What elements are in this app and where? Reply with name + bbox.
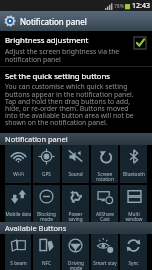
staticText: Smart stay — [93, 260, 117, 266]
button[interactable]: Multi window — [120, 185, 147, 222]
button[interactable]: Sound — [62, 145, 89, 183]
staticText: Mobile data — [5, 211, 31, 217]
staticText: 12:43 — [132, 1, 150, 11]
staticText: Blocking mode — [37, 211, 56, 222]
button[interactable]: Brightness adjustment checkbox — [134, 37, 146, 49]
staticText: Driving mode — [68, 260, 84, 270]
button[interactable]: Blocking mode — [33, 185, 60, 222]
staticText: You can customise which quick setting bu… — [5, 82, 141, 127]
button[interactable]: Wi-Fi — [5, 145, 31, 183]
staticText: Notification panel — [20, 16, 87, 27]
staticText: Sound — [68, 171, 83, 177]
button[interactable]: NFC — [33, 234, 60, 270]
staticText: Wi-Fi — [13, 171, 24, 177]
button[interactable]: Driving mode — [62, 234, 89, 270]
staticText: Set the quick setting buttons — [5, 71, 111, 82]
button[interactable]: Mobile data — [5, 185, 31, 222]
button[interactable]: Sync — [120, 234, 147, 270]
staticText: Power saving — [68, 211, 83, 222]
staticText: AllShare Cast — [96, 211, 114, 222]
staticText: 78% — [114, 3, 124, 10]
staticText: Available Buttons — [5, 223, 67, 233]
staticText: Sync — [128, 260, 139, 266]
button[interactable]: Bluetooth — [120, 145, 147, 183]
staticText: Adjust the screen brightness via the not… — [5, 47, 127, 64]
staticText: Screen rotation — [96, 171, 114, 182]
staticText: Brightness adjustment — [5, 35, 89, 46]
button[interactable]: Screen rotation — [91, 145, 118, 183]
staticText: GPS — [42, 171, 51, 177]
button[interactable]: Power saving — [62, 185, 89, 222]
staticText: S beam — [10, 260, 27, 266]
button[interactable]: Brightness adjustment — [0, 31, 152, 66]
button[interactable]: S beam — [5, 234, 31, 270]
button[interactable]: Smart stay — [91, 234, 118, 270]
staticText: Multi window — [125, 211, 143, 222]
staticText: Notification panel — [5, 134, 68, 144]
staticText: Bluetooth — [123, 171, 145, 177]
button[interactable]: GPS — [33, 145, 60, 183]
button[interactable]: AllShare Cast — [91, 185, 118, 222]
staticText: NFC — [42, 260, 51, 266]
